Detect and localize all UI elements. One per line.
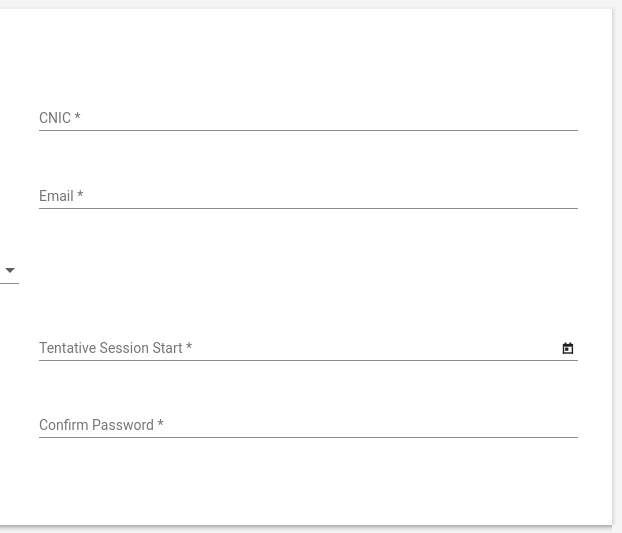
- staticText: Confirm Password *: [39, 417, 164, 433]
- button[interactable]: Confirm Password *: [39, 414, 578, 437]
- button[interactable]: Tentative Session Start *: [39, 337, 578, 360]
- staticText: Tentative Session Start *: [39, 340, 193, 356]
- staticText: CNIC *: [39, 110, 81, 126]
- staticText: Email *: [39, 188, 84, 204]
- button[interactable]: CNIC *: [39, 107, 578, 130]
- button[interactable]: Select option: [0, 260, 19, 283]
- other: Select date: [562, 342, 576, 356]
- button[interactable]: Email *: [39, 185, 578, 208]
